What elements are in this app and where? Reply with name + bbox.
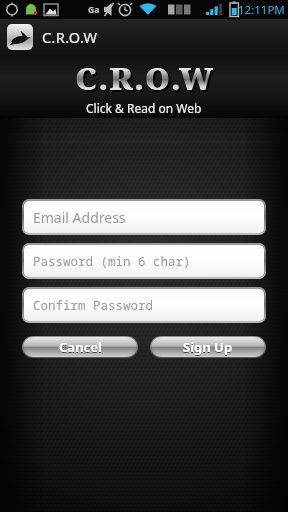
staticText: Sign Up [183, 338, 233, 356]
staticText: Cancel [59, 338, 102, 356]
button[interactable]: Confirm Password [24, 289, 264, 321]
button[interactable]: Password (min 6 char) [24, 245, 264, 277]
button[interactable]: Sign Up [151, 337, 265, 357]
staticText: Cancel [59, 339, 102, 357]
staticText: Password (min 6 char) [33, 253, 191, 270]
button[interactable]: Email Address [24, 201, 264, 233]
staticText: C.R.O.W [75, 57, 214, 99]
staticText: Click & Read on Web [86, 100, 202, 116]
staticText: Ga [88, 4, 100, 16]
staticText: C.R.O.W [42, 27, 98, 47]
staticText: C.R.O.W [77, 59, 216, 101]
staticText: Email Address [33, 208, 126, 227]
staticText: Sign Up [183, 339, 233, 357]
staticText: Confirm Password [33, 297, 154, 314]
staticText: 12:11PM [238, 2, 285, 18]
button[interactable]: Cancel [23, 337, 137, 357]
